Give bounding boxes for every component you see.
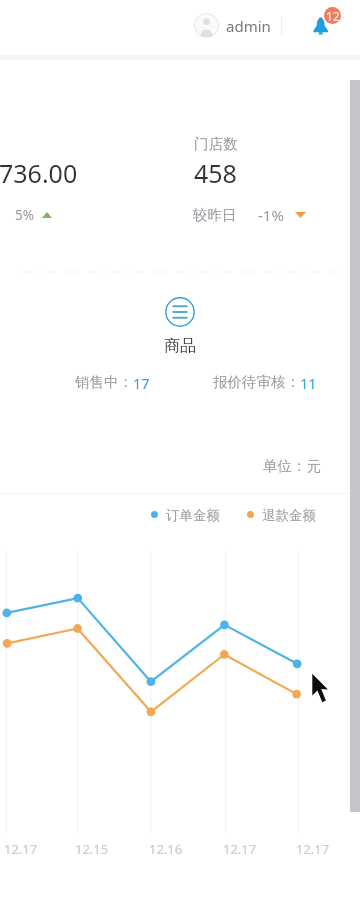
staticText: 17: [133, 373, 150, 393]
staticText: 736.00: [0, 156, 78, 190]
staticText: 销售中：: [75, 373, 133, 391]
button[interactable]: 报价待审核：: [213, 373, 317, 393]
staticText: 12.15: [75, 840, 109, 858]
staticText: 5%: [15, 206, 34, 224]
staticText: 12.17: [223, 840, 257, 858]
button[interactable]: Account: [194, 13, 219, 38]
staticText: 458: [194, 156, 237, 190]
staticText: 12.16: [149, 840, 183, 858]
staticText: 单位：元: [263, 457, 321, 475]
staticText: 12.17: [296, 840, 330, 858]
staticText: 订单金额: [166, 507, 220, 524]
staticText: 退款金额: [262, 507, 316, 524]
staticText: admin: [226, 16, 271, 36]
staticText: 商品: [164, 336, 196, 356]
button[interactable]: 商品: [160, 294, 200, 356]
staticText: 11: [300, 373, 317, 393]
button[interactable]: 销售中：: [75, 373, 150, 393]
staticText: 12: [326, 8, 340, 24]
staticText: -1%: [258, 205, 284, 225]
staticText: 较昨日: [193, 206, 237, 224]
staticText: 12.17: [4, 840, 38, 858]
button[interactable]: Notifications: [306, 5, 346, 45]
staticText: 报价待审核：: [213, 373, 300, 391]
staticText: 门店数: [194, 135, 238, 153]
